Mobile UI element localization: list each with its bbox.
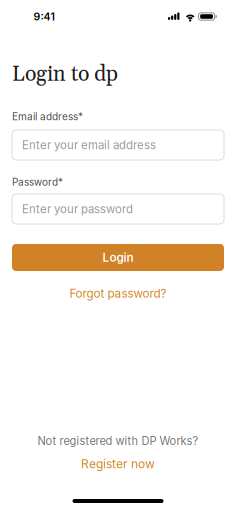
staticText: Login to dp (12, 61, 118, 88)
button[interactable]: Forgot password? (69, 286, 166, 300)
staticText: Forgot password? (69, 286, 166, 300)
staticText: Not registered with DP Works? (37, 434, 198, 448)
staticText: Login (102, 250, 133, 265)
staticText: Password* (12, 176, 63, 188)
staticText: Email address* (12, 110, 83, 123)
staticText: Enter your password (22, 202, 133, 216)
staticText: 9:41 (33, 10, 54, 23)
button[interactable]: Register now (81, 457, 155, 471)
staticText: Enter your email address (22, 138, 156, 152)
staticText: Register now (81, 457, 155, 471)
button[interactable]: Login (12, 244, 224, 271)
